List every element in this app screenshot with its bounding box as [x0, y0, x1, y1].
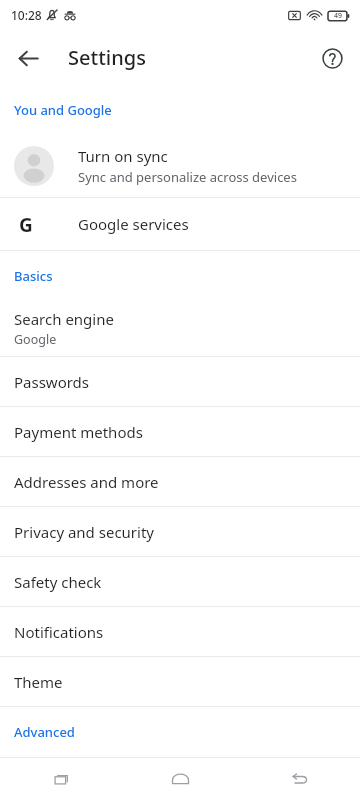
- staticText: 49: [334, 11, 343, 21]
- staticText: Basics: [14, 267, 53, 285]
- button[interactable]: Addresses and more: [0, 457, 360, 506]
- button[interactable]: Back: [6, 36, 50, 80]
- button[interactable]: Theme: [0, 657, 360, 706]
- button[interactable]: Payment methods: [0, 407, 360, 456]
- staticText: You and Google: [14, 101, 112, 119]
- button[interactable]: Passwords: [0, 357, 360, 406]
- staticText: Settings: [68, 44, 146, 71]
- button[interactable]: Turn on sync: [0, 135, 360, 197]
- staticText: Payment methods: [14, 422, 143, 442]
- button[interactable]: Help: [310, 36, 354, 80]
- staticText: G: [19, 212, 33, 236]
- staticText: Turn on sync: [78, 146, 168, 166]
- staticText: Google: [14, 331, 57, 348]
- staticText: Notifications: [14, 622, 104, 642]
- button[interactable]: G: [0, 198, 360, 250]
- staticText: Advanced: [14, 723, 75, 741]
- staticText: Safety check: [14, 572, 102, 592]
- button[interactable]: Home: [120, 758, 240, 800]
- staticText: Addresses and more: [14, 472, 159, 492]
- button[interactable]: Back: [240, 758, 360, 800]
- staticText: Privacy and security: [14, 522, 154, 542]
- button[interactable]: Privacy and security: [0, 507, 360, 556]
- staticText: 10:28: [11, 7, 42, 23]
- button[interactable]: Safety check: [0, 557, 360, 606]
- button[interactable]: Recents: [0, 758, 120, 800]
- staticText: Sync and personalize across devices: [78, 168, 297, 186]
- button[interactable]: Notifications: [0, 607, 360, 656]
- staticText: Passwords: [14, 372, 90, 392]
- staticText: Search engine: [14, 309, 114, 329]
- staticText: Google services: [78, 214, 189, 234]
- button[interactable]: Search engine: [0, 301, 360, 356]
- staticText: Theme: [14, 672, 63, 692]
